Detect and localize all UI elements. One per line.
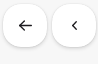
button[interactable]: Previous	[52, 4, 96, 47]
button[interactable]: Back	[3, 4, 47, 47]
